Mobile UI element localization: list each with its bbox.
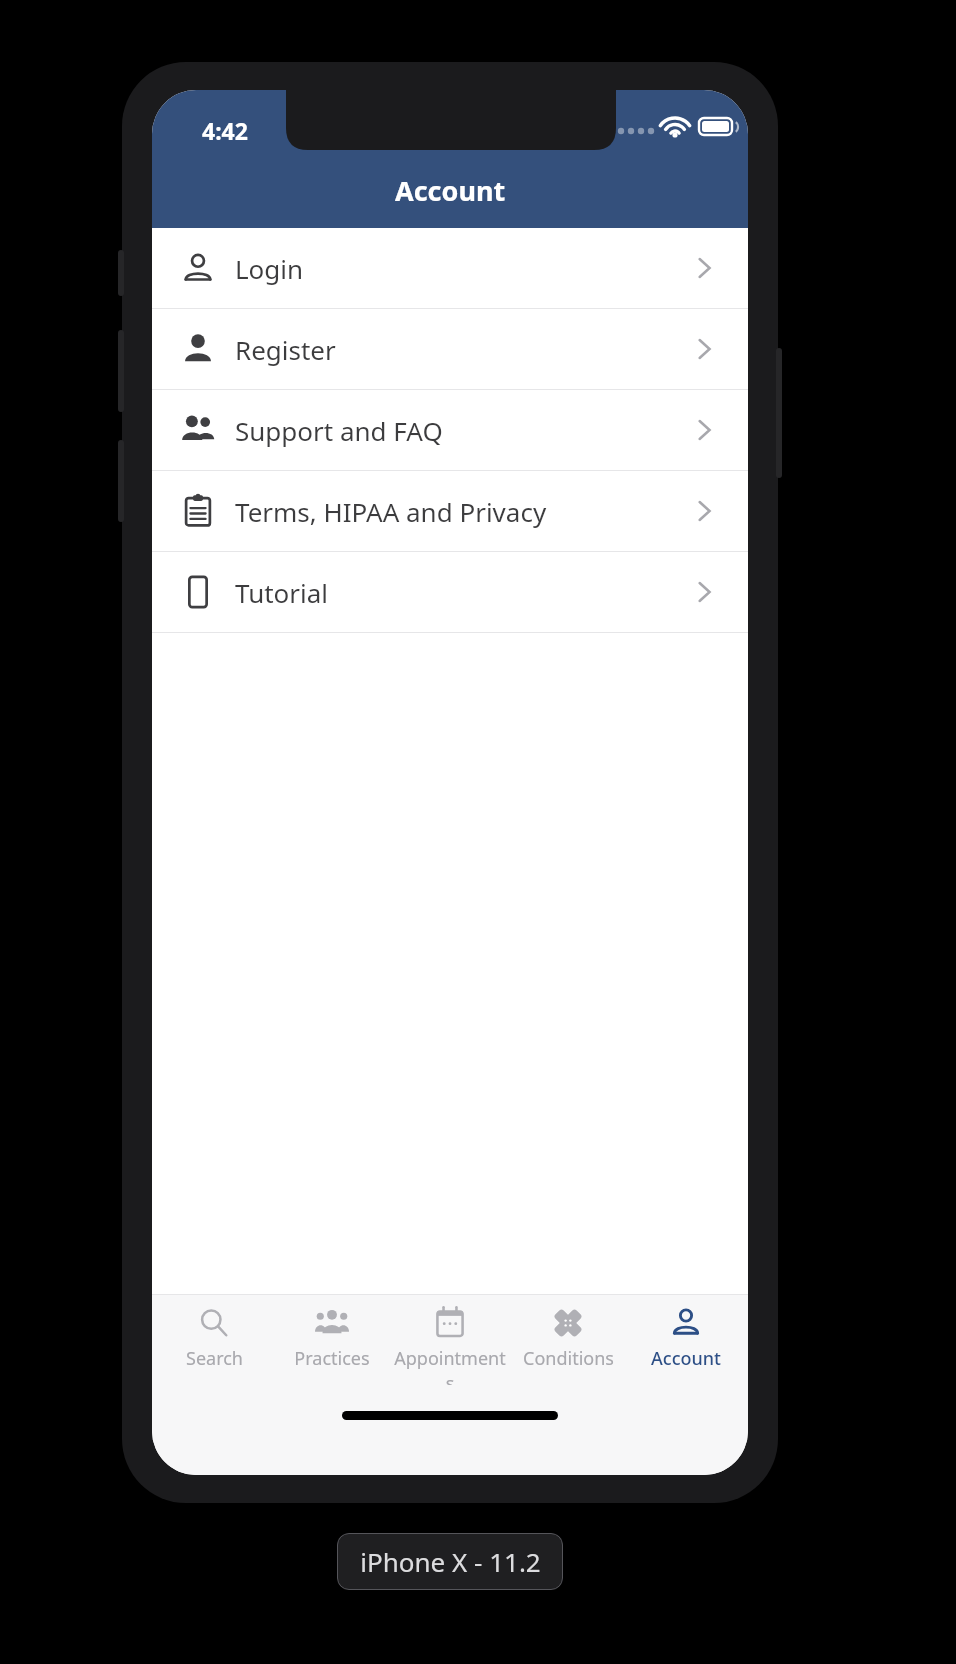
button[interactable]: Terms, HIPAA and Privacy — [152, 471, 748, 551]
staticText: Account — [651, 1346, 721, 1371]
staticText: Practices — [294, 1346, 370, 1371]
button[interactable]: Practices — [276, 1294, 388, 1385]
button[interactable]: Account — [630, 1294, 742, 1385]
staticText: Register — [235, 332, 336, 367]
button[interactable]: Conditions — [512, 1294, 624, 1385]
button[interactable]: Login — [152, 228, 748, 308]
staticText: Search — [186, 1346, 243, 1371]
staticText: Terms, HIPAA and Privacy — [235, 494, 547, 529]
button[interactable]: Appointments — [394, 1294, 506, 1385]
button[interactable]: Search — [158, 1294, 270, 1385]
staticText: iPhone X - 11.2 — [360, 1544, 541, 1579]
staticText: Appointments — [394, 1346, 506, 1385]
staticText: Conditions — [523, 1346, 614, 1371]
staticText: 4:42 — [202, 115, 248, 146]
button[interactable]: Tutorial — [152, 552, 748, 632]
staticText: Login — [235, 251, 304, 286]
button[interactable]: Register — [152, 309, 748, 389]
staticText: Tutorial — [235, 575, 329, 610]
staticText: Account — [395, 172, 506, 209]
staticText: Support and FAQ — [235, 413, 443, 448]
button[interactable]: Support and FAQ — [152, 390, 748, 470]
